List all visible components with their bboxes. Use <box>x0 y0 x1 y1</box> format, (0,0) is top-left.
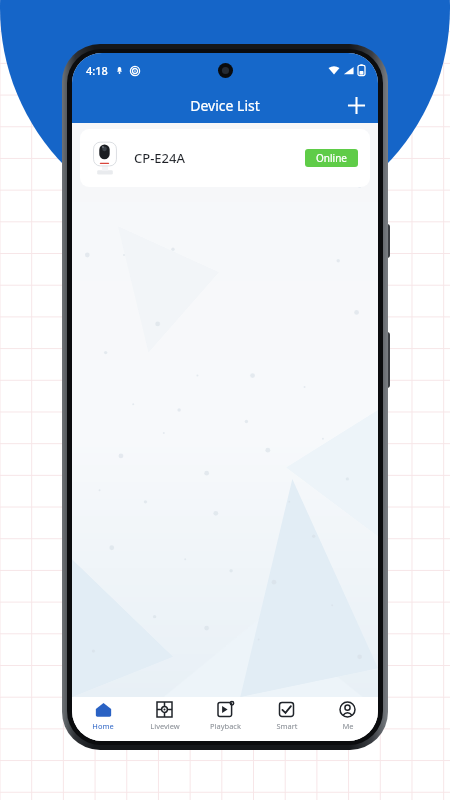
button[interactable]: Online <box>305 149 358 167</box>
staticText: 4:18 <box>86 63 108 78</box>
button[interactable]: Smart <box>256 697 317 741</box>
staticText: Playback <box>210 721 241 731</box>
staticText: Home <box>92 721 114 731</box>
button[interactable]: Playback <box>195 697 256 741</box>
staticText: CP-E24A <box>134 149 185 167</box>
button[interactable]: Add device <box>339 88 373 122</box>
staticText: Online <box>316 151 347 165</box>
staticText: Smart <box>276 721 298 731</box>
button[interactable]: Liveview <box>134 697 195 741</box>
staticText: Liveview <box>150 721 180 731</box>
staticText: Device List <box>190 96 260 115</box>
staticText: Me <box>342 721 354 731</box>
button[interactable]: Home <box>72 697 134 741</box>
button[interactable]: Me <box>317 697 378 741</box>
button[interactable]: CP-E24A <box>80 129 370 187</box>
